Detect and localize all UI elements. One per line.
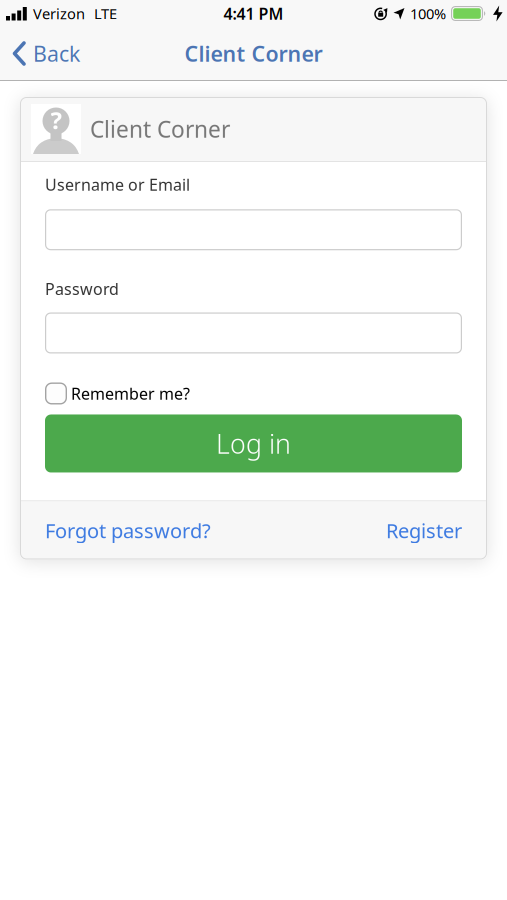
staticText: LTE (94, 4, 117, 23)
staticText: 4:41 PM (223, 3, 283, 24)
staticText: Verizon (33, 4, 85, 23)
staticText: Password (45, 278, 119, 299)
staticText: Client Corner (184, 39, 322, 68)
staticText: Username or Email (45, 174, 190, 195)
staticText: 100% (410, 4, 446, 23)
staticText: Client Corner (90, 114, 230, 144)
button[interactable]: Log in (45, 414, 462, 472)
button[interactable]: Forgot password? (45, 517, 211, 544)
staticText: Forgot password? (45, 517, 211, 544)
button[interactable]: Remember me? (45, 382, 190, 404)
button[interactable]: Back (0, 39, 80, 68)
staticText: Register (386, 517, 462, 544)
staticText: Back (33, 39, 80, 68)
staticText: ? (50, 104, 61, 136)
staticText: Remember me? (71, 383, 190, 404)
button[interactable]: Register (386, 517, 462, 544)
staticText: Log in (216, 426, 291, 461)
